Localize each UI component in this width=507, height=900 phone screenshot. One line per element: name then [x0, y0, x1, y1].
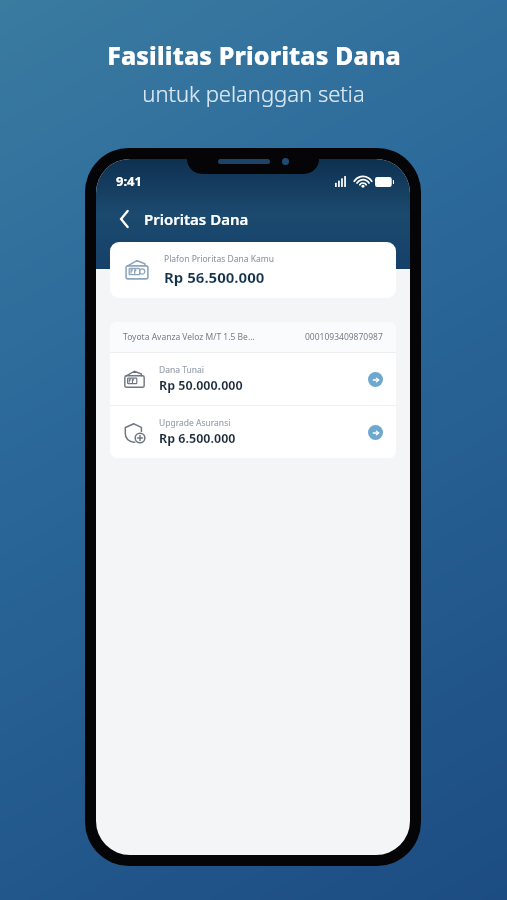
staticText: Prioritas Dana — [144, 209, 249, 229]
staticText: Plafon Prioritas Dana Kamu — [164, 253, 274, 265]
staticText: Toyota Avanza Veloz M/T 1.5 Be… — [123, 331, 255, 343]
staticText: Dana Tunai — [159, 364, 204, 376]
staticText: Upgrade Asuransi — [159, 417, 231, 429]
staticText: 9:41 — [116, 172, 142, 190]
staticText: Rp 50.000.000 — [159, 377, 243, 394]
button[interactable]: Dana Tunai — [110, 353, 396, 405]
staticText: Rp 56.500.000 — [164, 267, 265, 287]
button[interactable]: Open Dana Tunai — [368, 372, 383, 387]
button[interactable]: Upgrade Asuransi — [110, 406, 396, 458]
button[interactable]: Plafon Prioritas Dana Kamu — [110, 242, 396, 298]
staticText: Fasilitas Prioritas Dana — [107, 38, 401, 72]
button[interactable]: Back — [110, 205, 138, 233]
staticText: Rp 6.500.000 — [159, 430, 236, 447]
staticText: 0001093409870987 — [305, 331, 383, 343]
button[interactable]: Open Upgrade Asuransi — [368, 425, 383, 440]
staticText: untuk pelanggan setia — [142, 78, 365, 108]
